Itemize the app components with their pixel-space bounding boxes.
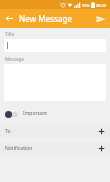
button[interactable]: Send (91, 9, 110, 28)
button[interactable]: Back (0, 9, 19, 28)
staticText: 95% (82, 3, 90, 8)
staticText: Important (23, 110, 48, 117)
staticText: Message (5, 56, 24, 62)
staticText: To (5, 128, 11, 135)
button[interactable]: To (0, 125, 110, 138)
staticText: New Message (19, 13, 73, 24)
staticText: 08:50 (96, 3, 107, 8)
button[interactable] (4, 39, 106, 52)
staticText: Title (5, 31, 14, 37)
button[interactable]: Notification (0, 142, 110, 155)
staticText: Notification (5, 145, 33, 152)
button[interactable]: Important (0, 107, 110, 120)
